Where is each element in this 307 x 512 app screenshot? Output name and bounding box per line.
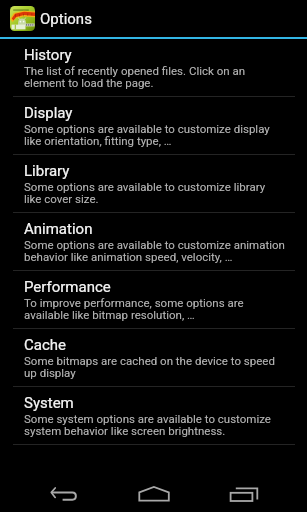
button[interactable]: Back xyxy=(40,463,88,511)
staticText: To improve performance, some options are… xyxy=(24,296,285,322)
staticText: Display xyxy=(24,104,73,122)
staticText: Some options are available to customize … xyxy=(24,122,285,148)
staticText: Animation xyxy=(24,220,93,238)
staticText: Options xyxy=(40,10,92,28)
staticText: Some options are available to customize … xyxy=(24,180,285,206)
button[interactable]: History xyxy=(0,39,307,96)
staticText: The list of recently opened files. Click… xyxy=(24,64,285,90)
button[interactable]: Options xyxy=(0,0,102,37)
button[interactable]: Cache xyxy=(0,329,307,386)
staticText: Some options are available to customize … xyxy=(24,238,285,264)
staticText: History xyxy=(24,46,72,64)
staticText: System xyxy=(24,394,74,412)
staticText: Library xyxy=(24,162,70,180)
staticText: Some bitmaps are cached on the device to… xyxy=(24,354,285,380)
button[interactable]: Animation xyxy=(0,213,307,270)
button[interactable]: Library xyxy=(0,155,307,212)
button[interactable]: Display xyxy=(0,97,307,154)
button[interactable]: Performance xyxy=(0,271,307,328)
button[interactable]: Home xyxy=(130,463,178,511)
button[interactable]: Recent apps xyxy=(220,463,268,511)
staticText: Performance xyxy=(24,278,111,296)
staticText: Some system options are available to cus… xyxy=(24,412,285,438)
staticText: Cache xyxy=(24,336,66,354)
button[interactable]: System xyxy=(0,387,307,444)
